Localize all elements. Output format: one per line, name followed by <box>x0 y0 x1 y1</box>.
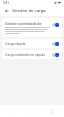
staticText: Carga inalámbrica rápida <box>5 52 50 57</box>
button[interactable]: Activado <box>52 53 59 57</box>
button[interactable]: Atrás <box>3 7 10 14</box>
staticText: Gestión de carga <box>12 8 46 14</box>
button[interactable]: Gestión optimizada de carga <box>2 18 62 37</box>
staticText: Carga rápida <box>5 41 50 46</box>
button[interactable]: Carga inalámbrica rápida <box>2 50 62 59</box>
staticText: Gestión optimizada de carga <box>5 21 50 26</box>
button[interactable]: Carga rápida <box>2 39 62 48</box>
button[interactable]: Activado <box>52 23 59 27</box>
button[interactable]: Activado <box>52 42 59 46</box>
staticText: 9:41 <box>3 1 9 5</box>
